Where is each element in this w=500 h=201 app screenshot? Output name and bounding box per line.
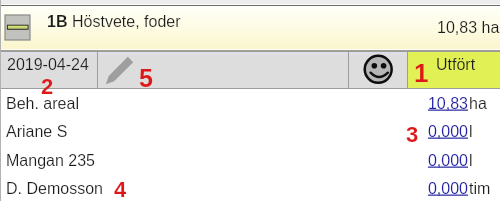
staticText: 0,000 [378,152,468,170]
staticText: 1B [47,13,68,31]
button[interactable]: Edit [100,52,140,88]
staticText: 5 [139,64,153,92]
button[interactable] [0,89,500,118]
staticText: Mangan 235 [6,152,95,170]
staticText: 10,83 ha [437,19,500,37]
staticText: 2019-04-24 [7,56,89,74]
staticText: 0,000 [378,180,468,198]
staticText: Utfört [436,56,476,74]
staticText: Höstvete, foder [72,13,181,31]
staticText: 1 [414,58,429,87]
staticText: l [469,152,473,170]
staticText: 0,000 [378,123,468,141]
button[interactable] [0,118,500,147]
staticText: Beh. areal [6,95,79,113]
staticText: l [469,123,473,141]
staticText: 4 [114,177,127,201]
button[interactable] [0,7,500,49]
button[interactable] [0,175,500,201]
button[interactable] [408,52,500,88]
button[interactable]: Status smiley [362,53,394,85]
staticText: D. Demosson [6,180,103,198]
staticText: Ariane S [6,123,68,141]
button[interactable] [0,146,500,175]
staticText: 3 [406,122,419,147]
staticText: 10,83 [378,95,468,113]
staticText: tim [469,180,491,198]
staticText: 2 [41,74,54,99]
staticText: ha [469,95,487,113]
button[interactable]: Crop status [5,15,30,40]
